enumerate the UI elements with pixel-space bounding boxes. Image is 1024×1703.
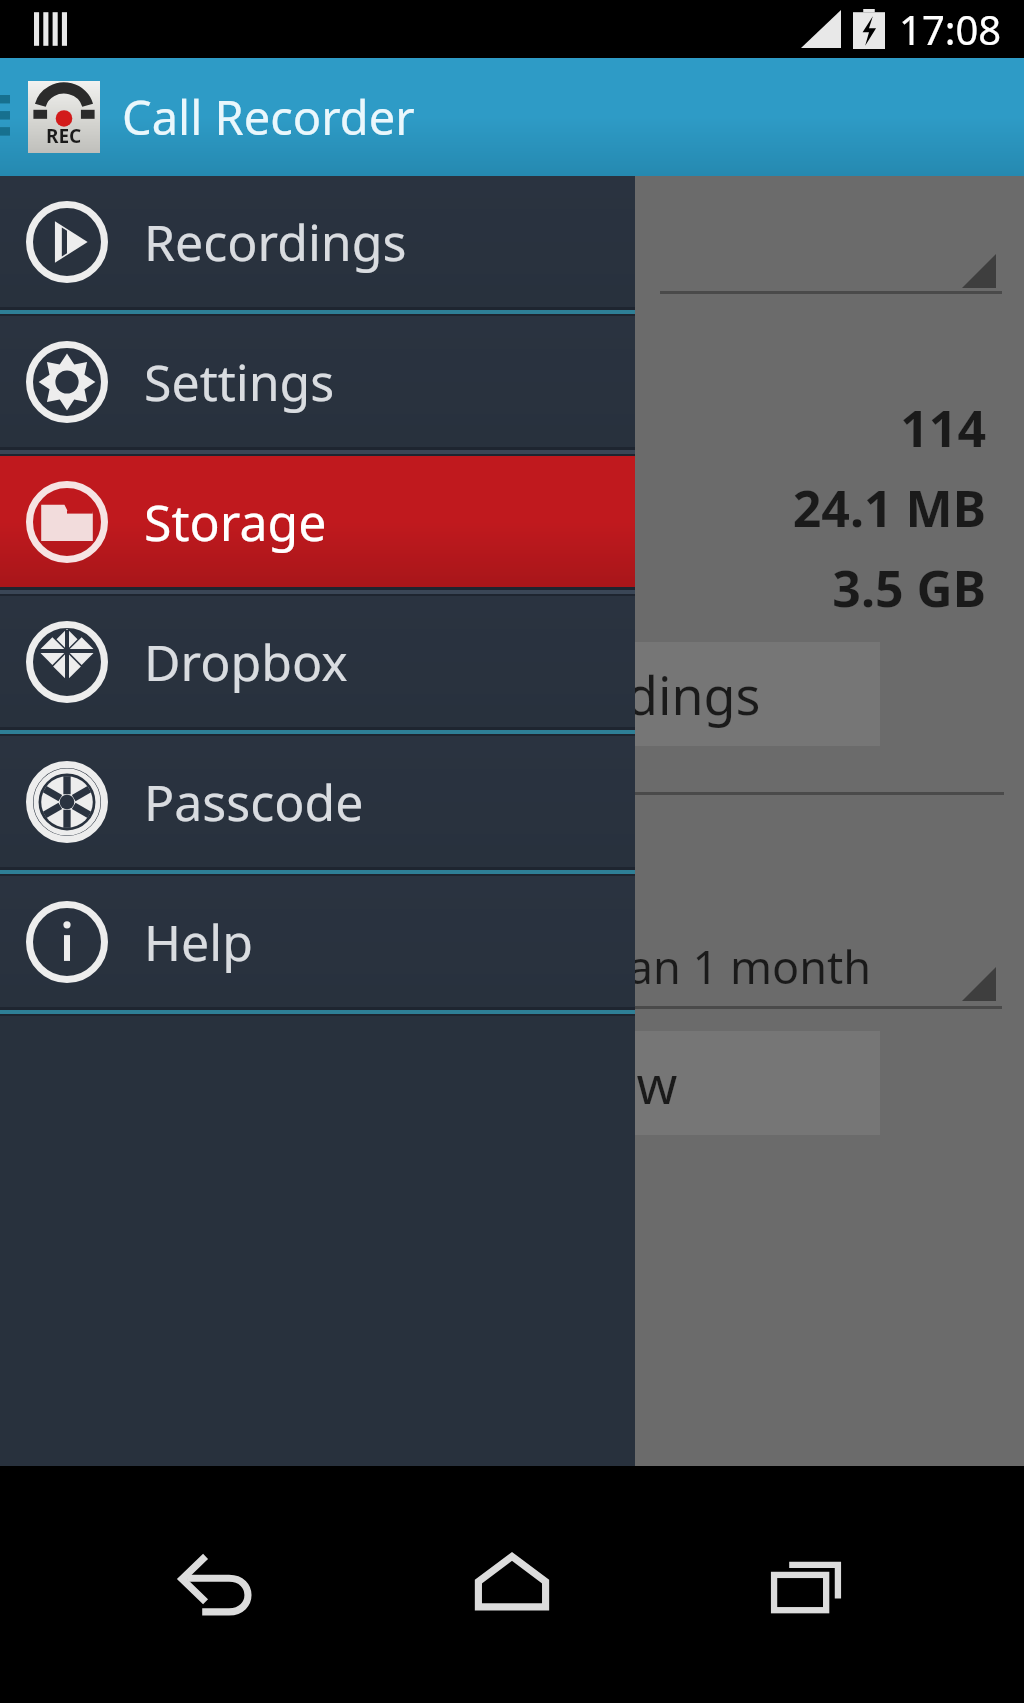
staticText: REC bbox=[46, 123, 82, 149]
staticText: Dropbox bbox=[144, 628, 348, 696]
button[interactable]: Recordings bbox=[0, 176, 635, 307]
staticText: Call Recorder bbox=[122, 85, 415, 149]
button[interactable]: Dropbox bbox=[0, 596, 635, 727]
button[interactable]: Settings bbox=[0, 316, 635, 447]
button[interactable]: ow bbox=[600, 1031, 880, 1135]
staticText: Storage bbox=[144, 488, 327, 556]
staticText: ow bbox=[606, 1048, 678, 1119]
button[interactable]: dings bbox=[620, 642, 880, 746]
button[interactable]: han 1 month bbox=[600, 923, 1002, 1009]
button[interactable]: Storage bbox=[0, 456, 635, 587]
staticText: Help bbox=[144, 908, 253, 976]
staticText: 114 bbox=[900, 394, 986, 462]
staticText: Recordings bbox=[144, 208, 407, 276]
button[interactable]: Back bbox=[144, 1510, 294, 1660]
button[interactable]: Passcode bbox=[0, 736, 635, 867]
button[interactable]: Home bbox=[437, 1510, 587, 1660]
staticText: 24.1 MB bbox=[792, 474, 986, 542]
staticText: 17:08 bbox=[899, 2, 1002, 56]
button[interactable]: Help bbox=[0, 876, 635, 1007]
staticText: Passcode bbox=[144, 768, 364, 836]
staticText: dings bbox=[626, 659, 761, 730]
staticText: Settings bbox=[144, 348, 335, 416]
staticText: 3.5 GB bbox=[832, 554, 986, 622]
button[interactable]: Recents bbox=[731, 1510, 881, 1660]
staticText: han 1 month bbox=[600, 936, 872, 997]
